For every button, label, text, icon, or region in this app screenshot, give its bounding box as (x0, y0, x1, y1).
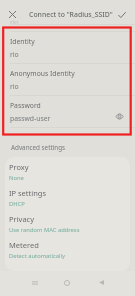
staticText: Connect to "Radius_SSID" (29, 10, 113, 19)
staticText: Identity (10, 37, 35, 46)
staticText: Proxy (9, 162, 29, 172)
button[interactable]: Save (113, 6, 130, 23)
staticText: Advanced settings (11, 143, 66, 152)
staticText: Use random MAC address (9, 226, 80, 234)
staticText: Privacy (9, 214, 35, 224)
staticText: Anonymous Identity (10, 69, 75, 78)
button[interactable]: Anonymous Identity (0, 63, 135, 95)
button[interactable]: Home (58, 274, 75, 291)
button[interactable]: Identity (0, 31, 135, 63)
button[interactable]: Back (93, 274, 110, 291)
staticText: IP settings (9, 188, 47, 198)
staticText: rio (10, 82, 19, 91)
button[interactable]: Password (0, 95, 135, 127)
staticText: None (9, 174, 24, 182)
staticText: rio (10, 18, 19, 27)
button[interactable]: IP settings (5, 187, 130, 213)
staticText: Detect automatically (9, 252, 65, 260)
button[interactable]: Privacy (5, 213, 130, 239)
staticText: Metered (9, 240, 39, 250)
button[interactable]: Metered (5, 239, 130, 265)
staticText: Password (10, 101, 41, 110)
staticText: rio (10, 50, 19, 59)
staticText: DHCP (9, 200, 25, 208)
staticText: passwd-user (10, 114, 51, 123)
button[interactable]: Proxy (5, 161, 130, 187)
button[interactable]: Recent apps (26, 274, 43, 291)
button[interactable]: Close (4, 6, 21, 23)
